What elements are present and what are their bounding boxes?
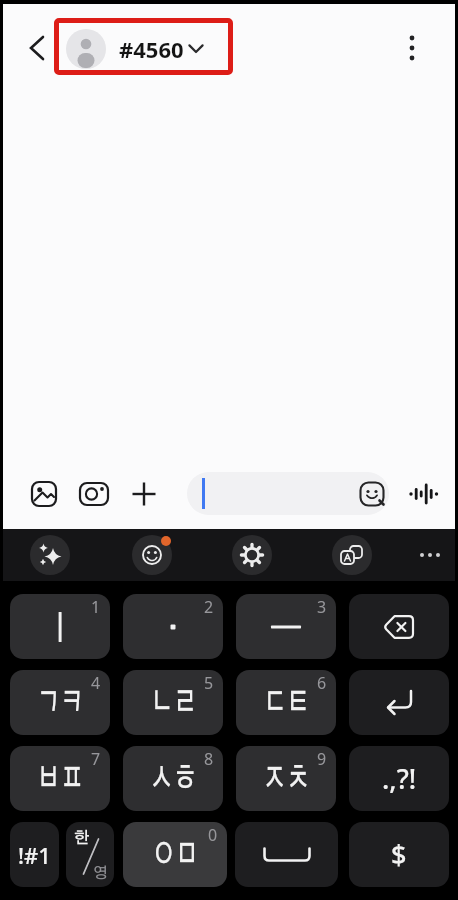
button[interactable] [349, 670, 449, 735]
button[interactable]: $ [349, 822, 449, 887]
button[interactable]: 2 [123, 594, 223, 659]
staticText: 3 [317, 596, 327, 618]
button[interactable]: 1 [10, 594, 110, 659]
staticText: ㅇㅁ [152, 838, 199, 872]
button[interactable]: 0 [123, 822, 227, 887]
staticText: 6 [317, 672, 327, 694]
staticText: 2 [204, 596, 214, 618]
button[interactable] [24, 34, 52, 62]
staticText: ㅈㅊ [263, 762, 310, 796]
button[interactable] [54, 18, 233, 75]
button[interactable]: 5 [123, 670, 223, 735]
button[interactable]: 한 [66, 822, 114, 887]
button[interactable]: 7 [10, 746, 110, 811]
staticText: 1 [91, 596, 101, 618]
staticText: .,?! [382, 760, 417, 797]
button[interactable] [349, 594, 449, 659]
staticText: ㄱㅋ [37, 686, 84, 720]
button[interactable]: !#1 [10, 822, 59, 887]
staticText: $ [391, 836, 407, 873]
staticText: #4560 [119, 34, 184, 64]
button[interactable] [400, 34, 424, 62]
button[interactable]: 4 [10, 670, 110, 735]
button[interactable] [332, 535, 372, 575]
button[interactable] [235, 822, 338, 887]
staticText: 5 [204, 672, 214, 694]
staticText: ㅅㅎ [150, 762, 197, 796]
button[interactable] [132, 535, 172, 575]
staticText: 9 [317, 748, 327, 770]
staticText: 영 [93, 866, 108, 881]
button[interactable] [30, 535, 70, 575]
staticText: ㅂㅍ [37, 762, 84, 796]
button[interactable] [409, 481, 439, 507]
button[interactable] [416, 541, 444, 569]
staticText: 4 [91, 672, 101, 694]
button[interactable]: 6 [236, 670, 336, 735]
staticText: 한 [74, 830, 90, 846]
staticText: ㄷㅌ [263, 686, 310, 720]
button[interactable] [29, 479, 59, 509]
button[interactable] [78, 480, 110, 508]
button[interactable] [131, 481, 157, 507]
button[interactable]: .,?! [349, 746, 449, 811]
staticText: 7 [91, 748, 101, 770]
button[interactable] [357, 479, 387, 509]
button[interactable]: 3 [236, 594, 336, 659]
staticText: 8 [204, 748, 214, 770]
staticText: ㄴㄹ [150, 686, 197, 720]
button[interactable]: 8 [123, 746, 223, 811]
button[interactable] [187, 472, 389, 515]
button[interactable]: 9 [236, 746, 336, 811]
staticText: 0 [208, 824, 218, 846]
button[interactable] [232, 535, 272, 575]
staticText: !#1 [18, 840, 51, 870]
